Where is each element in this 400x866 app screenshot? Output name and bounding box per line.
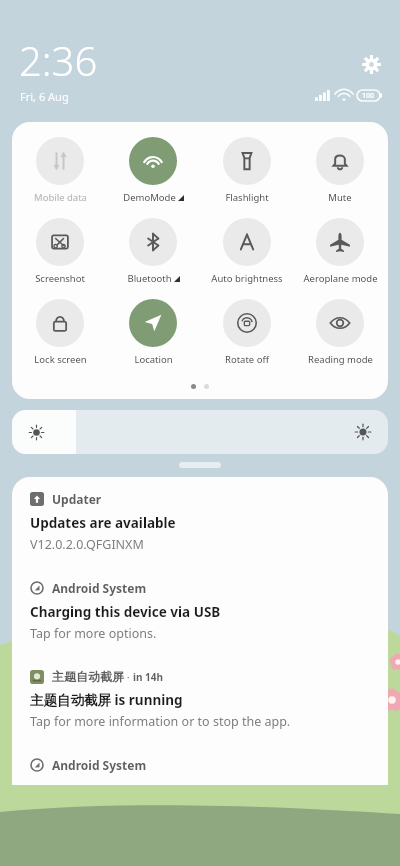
button[interactable]: Mobile data bbox=[15, 135, 105, 206]
button[interactable]: Updater bbox=[12, 477, 388, 566]
button[interactable]: Bluetooth bbox=[108, 216, 198, 287]
staticText: Mobile data bbox=[34, 191, 87, 204]
staticText: Screenshot bbox=[35, 272, 85, 285]
button[interactable] bbox=[179, 462, 221, 468]
staticText: Rotate off bbox=[225, 353, 269, 366]
button[interactable]: Android System bbox=[12, 566, 388, 655]
staticText: Mute bbox=[328, 191, 352, 204]
button[interactable]: Auto brightness bbox=[202, 216, 292, 287]
button[interactable]: Reading mode bbox=[295, 297, 385, 368]
staticText: Android System bbox=[52, 580, 147, 596]
staticText: Auto brightness bbox=[211, 272, 283, 285]
button[interactable]: Android System bbox=[12, 743, 388, 785]
staticText: · bbox=[124, 669, 133, 684]
button[interactable]: DemoMode bbox=[108, 135, 198, 206]
staticText: Aeroplane mode bbox=[303, 272, 378, 285]
staticText: Lock screen bbox=[34, 353, 87, 366]
staticText: Bluetooth bbox=[127, 272, 172, 285]
staticText: 主题自动截屏 is running bbox=[30, 691, 183, 709]
button[interactable]: Lock screen bbox=[15, 297, 105, 368]
button[interactable]: Screenshot bbox=[15, 216, 105, 287]
staticText: Tap for more options. bbox=[30, 625, 157, 642]
button[interactable]: Rotate off bbox=[202, 297, 292, 368]
staticText: in 14h bbox=[133, 670, 164, 684]
staticText: Android System bbox=[52, 757, 147, 773]
button[interactable]: Location bbox=[108, 297, 198, 368]
staticText: Flashlight bbox=[225, 191, 269, 204]
button[interactable]: 主题自动截屏 bbox=[12, 655, 388, 743]
staticText: Charging this device via USB bbox=[30, 603, 221, 621]
staticText: Updates are available bbox=[30, 514, 176, 532]
staticText: Location bbox=[134, 353, 173, 366]
button[interactable]: Flashlight bbox=[202, 135, 292, 206]
staticText: Fri, 6 Aug bbox=[20, 89, 69, 104]
button[interactable]: Settings bbox=[358, 51, 384, 77]
button[interactable]: Brightness bbox=[12, 410, 388, 454]
staticText: V12.0.2.0.QFGINXM bbox=[30, 536, 144, 553]
staticText: Reading mode bbox=[308, 353, 373, 366]
staticText: Updater bbox=[52, 491, 102, 507]
button[interactable]: Aeroplane mode bbox=[295, 216, 385, 287]
staticText: 100 bbox=[362, 91, 375, 101]
staticText: 主题自动截屏 bbox=[52, 669, 124, 684]
staticText: DemoMode bbox=[123, 191, 176, 204]
staticText: 2:36 bbox=[19, 33, 98, 87]
staticText: Tap for more information or to stop the … bbox=[30, 713, 291, 730]
button[interactable]: Mute bbox=[295, 135, 385, 206]
